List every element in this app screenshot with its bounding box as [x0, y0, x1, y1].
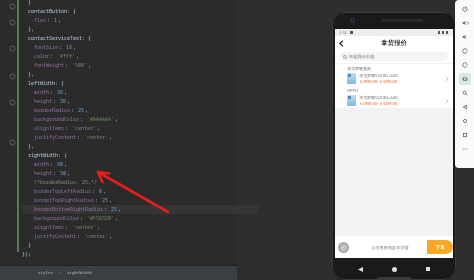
staticText: , [67, 98, 71, 105]
staticText: width [22, 89, 50, 96]
staticText: ￥2999.00~￥3299.00 [359, 101, 397, 106]
staticText: borderTopRightRadius [22, 197, 95, 204]
staticText: 华为荣耀V20 8G+64G [359, 73, 398, 78]
staticText: , [67, 170, 71, 177]
button[interactable]: Screenshot [459, 73, 471, 85]
staticText: , [76, 53, 80, 60]
staticText: : [65, 125, 72, 132]
staticText: 'center' [72, 224, 97, 231]
staticText: 25 [111, 206, 118, 213]
staticText: : [65, 62, 72, 69]
staticText: , [115, 215, 119, 222]
staticText: alignItems [22, 125, 65, 132]
button[interactable]: Volume up [459, 17, 471, 29]
staticText: '#fff' [57, 53, 76, 60]
button[interactable]: Rotate right [459, 59, 471, 71]
staticText: leftWidth: { [22, 80, 65, 87]
staticText: contactButton: { [22, 8, 77, 15]
staticText: , [109, 197, 113, 204]
button[interactable]: 搜索商品名称 [343, 52, 445, 61]
staticText: 90 [57, 161, 64, 168]
button[interactable]: Overview [459, 129, 471, 141]
staticText: } [22, 0, 32, 6]
staticText: , [115, 116, 119, 123]
staticText: , [88, 62, 92, 69]
staticText: 18 [66, 44, 73, 51]
staticText: : [95, 197, 102, 204]
staticText: , [85, 107, 89, 114]
button[interactable]: 下单 [427, 240, 453, 254]
button[interactable]: 华为荣耀V20 8G+64G [347, 95, 449, 106]
staticText: , [97, 224, 101, 231]
staticText: : [50, 53, 57, 60]
staticText: }); [22, 251, 32, 258]
staticText: rightWidth [67, 270, 93, 276]
staticText: styles [38, 270, 54, 276]
button[interactable]: Contact service [338, 242, 349, 253]
staticText: contactServiceText: { [22, 35, 92, 42]
staticText: : [50, 161, 57, 168]
staticText: backgroundColor [22, 215, 80, 222]
staticText: 50 [60, 170, 67, 177]
staticText: /*borderRadius: 25,*/ [22, 179, 98, 186]
staticText: }, [22, 71, 35, 78]
button[interactable]: Recent apps [422, 263, 434, 275]
staticText: 'center' [72, 125, 97, 132]
staticText: color [22, 53, 50, 60]
staticText: flex [22, 17, 47, 24]
staticText: width [22, 161, 50, 168]
staticText: 'center' [84, 233, 109, 240]
staticText: , [64, 161, 68, 168]
staticText: 25 [78, 107, 85, 114]
staticText: borderRadius [22, 107, 71, 114]
staticText: : [77, 134, 84, 141]
staticText: : [77, 233, 84, 240]
button[interactable]: Back [459, 101, 471, 113]
button[interactable]: Rotate left [459, 45, 471, 57]
staticText: ￥2999.00~￥3299.00 [359, 79, 397, 84]
staticText: , [97, 125, 101, 132]
staticText: : [53, 170, 60, 177]
staticText: 华为荣耀V20 8G+64G [359, 95, 398, 100]
staticText: : [53, 98, 60, 105]
staticText: }, [22, 143, 35, 150]
button[interactable]: Back [354, 263, 366, 275]
staticText: fontWeight [22, 62, 65, 69]
staticText: 1 [54, 17, 58, 24]
button[interactable]: Power [459, 3, 471, 15]
staticText: 25 [102, 197, 109, 204]
staticText: 下单 [435, 244, 445, 250]
staticText: 'center' [84, 134, 109, 141]
staticText: : [47, 17, 54, 24]
staticText: rightWidth: { [22, 152, 68, 159]
staticText: : [80, 215, 87, 222]
staticText: fontSize [22, 44, 59, 51]
staticText: 2:56 [339, 30, 348, 35]
button[interactable]: Back [335, 37, 347, 49]
staticText: : [80, 116, 87, 123]
button[interactable]: More [459, 143, 471, 155]
button[interactable]: Home [388, 263, 400, 275]
staticText: , [103, 188, 107, 195]
staticText: : [65, 224, 72, 231]
button[interactable]: Volume down [459, 31, 471, 43]
staticText: height [22, 170, 53, 177]
staticText: 拿货报价 [381, 39, 407, 47]
staticText: : [59, 44, 66, 51]
staticText: 搜索商品名称 [349, 54, 375, 59]
staticText: justifyContent [22, 233, 77, 240]
staticText: 华为荣耀系列 [347, 66, 371, 71]
staticText: : [71, 107, 78, 114]
staticText: , [64, 89, 68, 96]
staticText: }, [22, 26, 35, 33]
button[interactable]: Home [459, 115, 471, 127]
button[interactable]: Zoom [459, 87, 471, 99]
staticText: borderBottomRightRadius [22, 206, 104, 213]
button[interactable]: 华为荣耀V20 8G+64G [347, 73, 449, 84]
staticText: alignItems [22, 224, 65, 231]
staticText: 38 [60, 98, 67, 105]
staticText: } [22, 242, 32, 249]
staticText: : [50, 89, 57, 96]
staticText: OPPO [347, 88, 359, 93]
staticText: '#F58320' [87, 215, 115, 222]
